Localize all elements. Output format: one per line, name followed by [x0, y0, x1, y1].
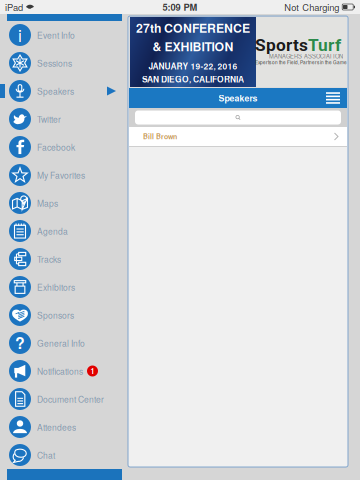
- staticText: Event Info: [37, 29, 75, 41]
- staticText: Speakers: [218, 92, 257, 104]
- button[interactable]: Facebook: [0, 133, 129, 161]
- button[interactable]: Agenda: [0, 217, 129, 245]
- staticText: MANAGERS ASSOCIATION: [269, 52, 343, 60]
- button[interactable]: Maps: [0, 189, 129, 217]
- button[interactable]: Sessions: [0, 49, 129, 77]
- staticText: Bill Brown: [143, 131, 177, 141]
- staticText: 5:09 PM: [162, 0, 197, 14]
- staticText: Sponsors: [37, 309, 74, 321]
- staticText: Tracks: [37, 253, 61, 265]
- staticText: Document Center: [37, 393, 104, 405]
- staticText: ?: [15, 331, 25, 354]
- staticText: Attendees: [37, 421, 76, 433]
- staticText: & EXHIBITION: [152, 37, 233, 55]
- staticText: i: [18, 22, 22, 47]
- button[interactable]: My Favorites: [0, 161, 129, 189]
- button[interactable]: Exhibitors: [0, 273, 129, 301]
- staticText: Experts on the Field, Partners in the Ga…: [255, 59, 348, 66]
- staticText: Sessions: [37, 57, 72, 69]
- button[interactable]: Document Center: [0, 385, 129, 413]
- staticText: Twitter: [37, 113, 61, 125]
- staticText: My Favorites: [37, 169, 85, 181]
- button[interactable]: Tracks: [0, 245, 129, 273]
- staticText: JANUARY 19-22, 2016: [148, 60, 237, 72]
- staticText: General Info: [37, 337, 85, 349]
- button[interactable]: Speakers: [0, 77, 129, 105]
- button[interactable]: Bill Brown: [129, 127, 347, 146]
- button[interactable]: Twitter: [0, 105, 129, 133]
- staticText: Facebook: [37, 141, 75, 153]
- button[interactable]: i: [0, 21, 129, 49]
- staticText: Speakers: [37, 85, 74, 97]
- staticText: Chat: [37, 449, 55, 461]
- staticText: Sports: [255, 35, 308, 55]
- staticText: SAN DIEGO, CALIFORNIA: [142, 73, 244, 85]
- staticText: Notifications: [37, 365, 83, 377]
- staticText: Agenda: [37, 225, 68, 237]
- staticText: Maps: [37, 197, 58, 209]
- button[interactable]: ?: [0, 329, 129, 357]
- button[interactable]: Chat: [0, 441, 129, 469]
- button[interactable]: Notifications: [0, 357, 129, 385]
- staticText: 1: [90, 366, 94, 376]
- staticText: 27th CONFERENCE: [136, 19, 250, 36]
- staticText: iPad: [5, 0, 23, 14]
- staticText: Not Charging: [284, 0, 339, 14]
- button[interactable]: Attendees: [0, 413, 129, 441]
- staticText: Turf: [308, 35, 341, 55]
- staticText: Exhibitors: [37, 281, 75, 293]
- button[interactable]: Menu: [323, 89, 343, 107]
- button[interactable]: Sponsors: [0, 301, 129, 329]
